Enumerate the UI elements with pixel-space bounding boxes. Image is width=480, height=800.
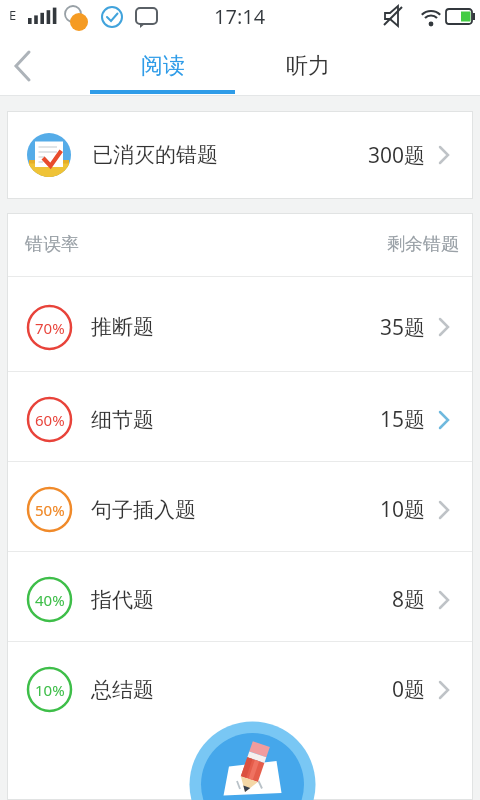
staticText: 推断题 [91,314,154,340]
staticText: 60% [35,410,65,430]
staticText: 300题 [368,141,426,170]
staticText: 听力 [286,52,330,80]
button[interactable] [190,722,315,800]
staticText: 70% [35,318,65,338]
staticText: 17:14 [214,3,266,30]
staticText: 40% [35,590,65,610]
staticText: 句子插入题 [91,497,196,523]
staticText: 总结题 [91,677,154,703]
staticText: 指代题 [91,587,154,613]
staticText: 10% [35,680,65,700]
button[interactable]: 10% [7,642,473,731]
staticText: 剩余错题 [387,233,459,256]
button[interactable]: 听力 [235,36,380,96]
button[interactable]: 70% [7,277,473,371]
staticText: 15题 [380,405,426,434]
button[interactable]: 阅读 [90,36,235,96]
staticText: 35题 [380,313,426,342]
staticText: 错误率 [25,233,79,256]
staticText: 0题 [392,675,426,704]
button[interactable]: 60% [7,372,473,461]
staticText: 50% [35,500,65,520]
staticText: 细节题 [91,407,154,433]
staticText: 10题 [380,495,426,524]
button[interactable]: 40% [7,552,473,641]
staticText: 8题 [392,585,426,614]
button[interactable]: 50% [7,462,473,551]
button[interactable]: 已消灭的错题 [7,111,473,199]
button[interactable] [0,36,52,96]
staticText: 已消灭的错题 [92,142,218,168]
staticText: E [9,6,17,24]
staticText: 阅读 [141,52,185,80]
